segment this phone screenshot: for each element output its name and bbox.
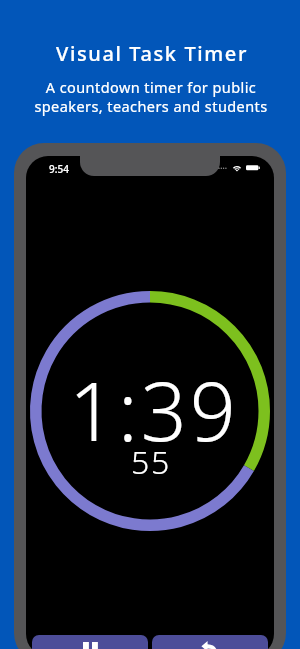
button[interactable]: Reset bbox=[152, 635, 268, 649]
button[interactable]: Pause bbox=[32, 635, 148, 649]
staticText: Visual Task Timer bbox=[56, 40, 248, 67]
staticText: 1:39 bbox=[69, 355, 239, 465]
staticText: A countdown timer for public speakers, t… bbox=[34, 77, 268, 116]
staticText: 55 bbox=[131, 440, 172, 484]
staticText: 9:54 bbox=[49, 162, 69, 176]
